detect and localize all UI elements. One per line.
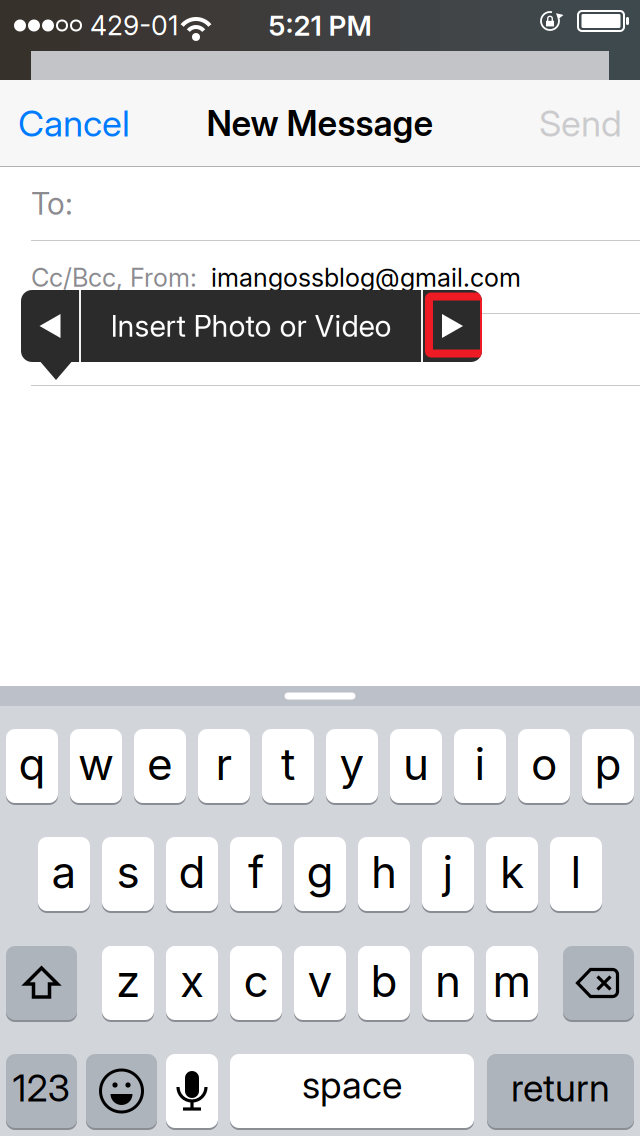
button[interactable]: x bbox=[166, 945, 218, 1021]
button[interactable]: Cc/Bcc, From: bbox=[0, 241, 640, 314]
button[interactable]: q bbox=[6, 728, 58, 804]
button[interactable]: Delete bbox=[563, 945, 634, 1021]
button[interactable]: Dictation bbox=[166, 1053, 218, 1129]
button[interactable]: g bbox=[294, 836, 346, 912]
staticText: To: bbox=[31, 185, 73, 222]
staticText: b bbox=[370, 954, 397, 1008]
button[interactable]: p bbox=[582, 728, 634, 804]
staticText: i bbox=[474, 737, 485, 791]
button[interactable]: Send bbox=[502, 80, 640, 167]
staticText: f bbox=[248, 845, 264, 899]
button[interactable]: i bbox=[454, 728, 506, 804]
button[interactable]: h bbox=[358, 836, 410, 912]
staticText: w bbox=[78, 737, 114, 791]
button[interactable]: u bbox=[390, 728, 442, 804]
staticText: m bbox=[492, 954, 531, 1008]
button[interactable]: l bbox=[550, 836, 602, 912]
staticText: q bbox=[18, 737, 45, 791]
staticText: e bbox=[147, 737, 173, 791]
button[interactable]: j bbox=[422, 836, 474, 912]
button[interactable] bbox=[0, 314, 640, 385]
button[interactable]: a bbox=[38, 836, 90, 912]
button[interactable]: y bbox=[326, 728, 378, 804]
button[interactable]: d bbox=[166, 836, 218, 912]
staticText: Send bbox=[539, 102, 622, 145]
staticText: Cancel bbox=[18, 102, 130, 145]
button[interactable]: z bbox=[102, 945, 154, 1021]
staticText: t bbox=[281, 737, 295, 791]
staticText: a bbox=[51, 845, 76, 899]
button[interactable]: n bbox=[422, 945, 474, 1021]
staticText: n bbox=[435, 954, 461, 1008]
staticText: New Message bbox=[206, 102, 433, 144]
staticText: Insert Photo or Video bbox=[110, 308, 391, 344]
staticText: x bbox=[180, 954, 204, 1008]
button[interactable]: o bbox=[518, 728, 570, 804]
staticText: s bbox=[116, 845, 139, 899]
button[interactable]: space bbox=[230, 1053, 474, 1129]
button[interactable]: r bbox=[198, 728, 250, 804]
button[interactable]: Shift bbox=[6, 945, 77, 1021]
button[interactable]: f bbox=[230, 836, 282, 912]
button[interactable]: 123 bbox=[6, 1053, 77, 1129]
button[interactable]: c bbox=[230, 945, 282, 1021]
staticText: h bbox=[371, 845, 397, 899]
button[interactable]: Previous menu page bbox=[21, 290, 79, 362]
button[interactable]: m bbox=[486, 945, 538, 1021]
button[interactable]: Cancel bbox=[0, 80, 158, 167]
staticText: y bbox=[339, 737, 364, 791]
staticText: imangossblog@gmail.com bbox=[211, 262, 521, 293]
staticText: space bbox=[302, 1062, 402, 1108]
staticText: z bbox=[116, 954, 140, 1008]
staticText: g bbox=[306, 845, 333, 899]
staticText: o bbox=[531, 737, 557, 791]
staticText: u bbox=[403, 737, 429, 791]
button[interactable]: b bbox=[358, 945, 410, 1021]
staticText: 5:21 PM bbox=[268, 9, 371, 42]
button[interactable]: t bbox=[262, 728, 314, 804]
staticText: v bbox=[307, 954, 332, 1008]
button[interactable]: s bbox=[102, 836, 154, 912]
button[interactable]: k bbox=[486, 836, 538, 912]
staticText: c bbox=[243, 954, 268, 1008]
button[interactable]: Insert Photo or Video bbox=[81, 290, 421, 362]
staticText: Cc/Bcc, From: bbox=[31, 262, 197, 293]
staticText: 429-01 bbox=[90, 9, 178, 42]
staticText: r bbox=[215, 737, 232, 791]
button[interactable]: w bbox=[70, 728, 122, 804]
staticText: d bbox=[178, 845, 205, 899]
staticText: 123 bbox=[12, 1065, 70, 1111]
button[interactable]: return bbox=[487, 1053, 634, 1129]
button[interactable]: Emoji bbox=[86, 1053, 157, 1129]
staticText: l bbox=[570, 845, 581, 899]
button[interactable]: Next menu page bbox=[423, 290, 482, 362]
staticText: p bbox=[594, 737, 621, 791]
staticText: return bbox=[511, 1065, 610, 1111]
button[interactable]: v bbox=[294, 945, 346, 1021]
staticText: k bbox=[500, 845, 524, 899]
button[interactable]: e bbox=[134, 728, 186, 804]
staticText: j bbox=[442, 845, 453, 899]
button[interactable]: To: bbox=[0, 167, 640, 240]
